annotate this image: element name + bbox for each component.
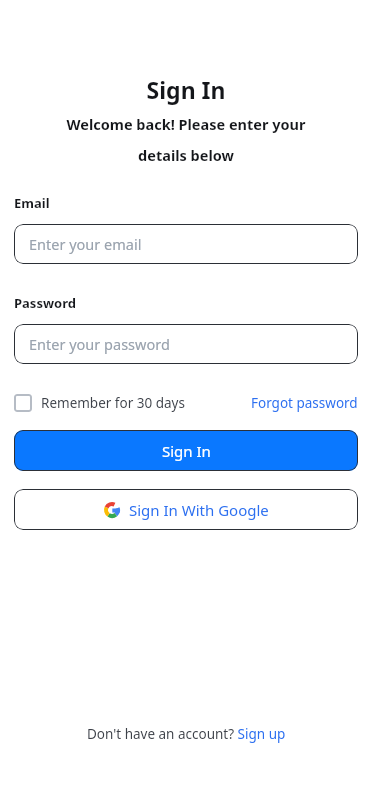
staticText: Remember for 30 days [41, 394, 185, 412]
staticText: Welcome back! Please enter your details … [42, 114, 330, 165]
staticText: Enter your email [29, 234, 142, 254]
button[interactable]: Remember for 30 days [14, 390, 185, 416]
button[interactable]: Don't have an account? Sign up [83, 721, 290, 747]
other: Google [104, 502, 120, 518]
button[interactable]: Forgot password [251, 390, 358, 416]
staticText: Sign In [162, 441, 211, 461]
button[interactable]: Google [14, 489, 358, 530]
staticText: Sign In [14, 74, 358, 105]
button[interactable]: Enter your password [14, 324, 358, 364]
staticText: Forgot password [251, 394, 358, 412]
button[interactable]: Enter your email [14, 224, 358, 264]
staticText: Sign In With Google [129, 500, 269, 520]
button[interactable]: Sign In [14, 430, 358, 471]
staticText: Don't have an account? Sign up [87, 725, 286, 743]
staticText: Enter your password [29, 334, 170, 354]
staticText: Email [14, 194, 50, 212]
staticText: Password [14, 294, 76, 312]
